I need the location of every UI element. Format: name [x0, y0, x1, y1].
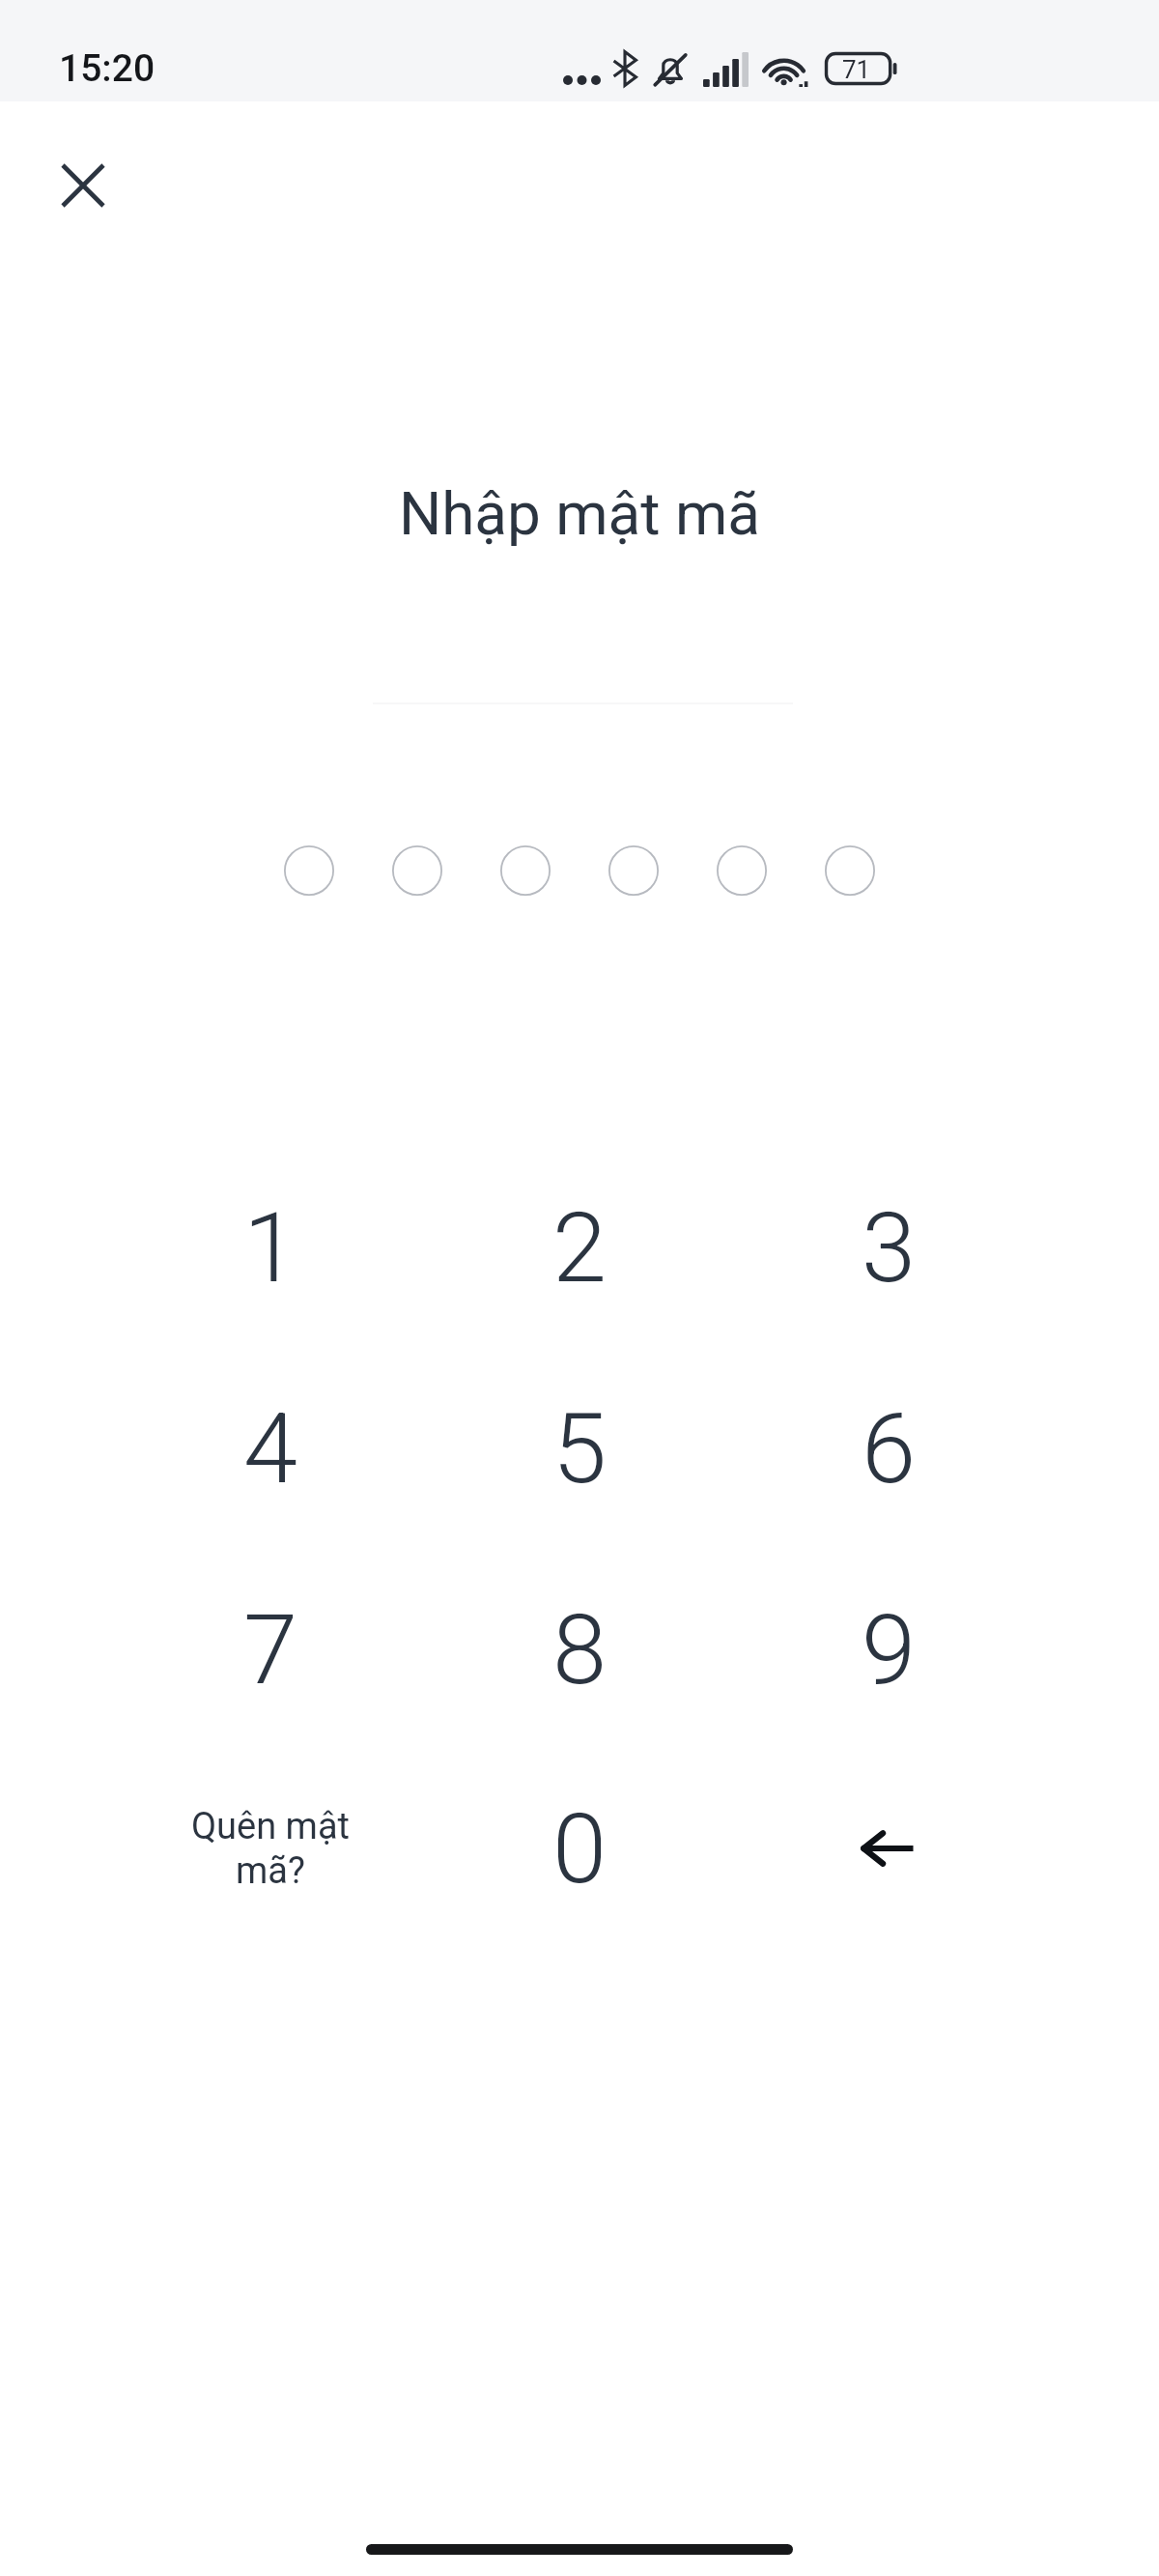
- button[interactable]: 6: [763, 1352, 1014, 1545]
- button[interactable]: 8: [454, 1553, 705, 1746]
- staticText: 5: [552, 1391, 608, 1505]
- button[interactable]: 7: [145, 1553, 396, 1746]
- button[interactable]: Close: [21, 124, 145, 247]
- button[interactable]: Quên mật mã?: [145, 1752, 396, 1945]
- button[interactable]: 1: [145, 1151, 396, 1344]
- staticText: 3: [862, 1190, 917, 1304]
- staticText: 8: [552, 1592, 608, 1706]
- button[interactable]: 0: [454, 1752, 705, 1945]
- staticText: 15:20: [59, 46, 155, 91]
- button[interactable]: 2: [454, 1151, 705, 1344]
- staticText: 2: [552, 1190, 608, 1304]
- button[interactable]: 3: [763, 1151, 1014, 1344]
- staticText: Quên mật mã?: [184, 1805, 357, 1893]
- button[interactable]: Backspace: [761, 1752, 1012, 1945]
- staticText: 9: [862, 1592, 917, 1706]
- staticText: 0: [552, 1791, 608, 1905]
- staticText: 4: [243, 1391, 298, 1505]
- staticText: 1: [243, 1190, 298, 1304]
- staticText: 71: [842, 55, 871, 84]
- button[interactable]: 4: [145, 1352, 396, 1545]
- staticText: 7: [243, 1592, 298, 1706]
- button[interactable]: 9: [763, 1553, 1014, 1746]
- staticText: Nhập mật mã: [0, 478, 1159, 549]
- button[interactable]: 5: [454, 1352, 705, 1545]
- staticText: 6: [862, 1391, 917, 1505]
